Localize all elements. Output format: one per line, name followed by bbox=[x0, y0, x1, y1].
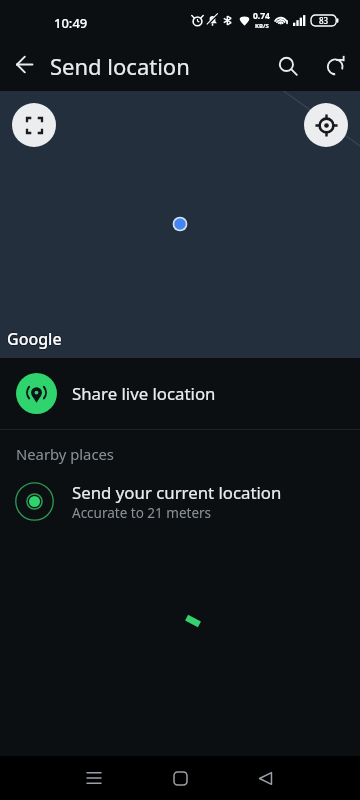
button[interactable]: Back bbox=[241, 756, 289, 800]
staticText: Send location bbox=[50, 51, 190, 81]
button[interactable]: Share live location bbox=[0, 358, 360, 429]
button[interactable]: Refresh bbox=[312, 42, 360, 90]
staticText: 83 bbox=[319, 15, 329, 26]
button[interactable]: Back bbox=[0, 42, 48, 90]
staticText: Google bbox=[8, 328, 63, 350]
button[interactable]: Search bbox=[264, 42, 312, 90]
staticText: Accurate to 21 meters bbox=[72, 504, 212, 522]
staticText: Share live location bbox=[72, 382, 216, 405]
button[interactable]: Expand map bbox=[12, 103, 56, 147]
staticText: 0.74 bbox=[253, 10, 270, 22]
button[interactable]: My location bbox=[304, 103, 348, 147]
button[interactable]: Send your current location bbox=[0, 471, 360, 532]
staticText: Google bbox=[6, 328, 61, 350]
staticText: Google bbox=[7, 328, 62, 350]
button[interactable]: Recents bbox=[70, 756, 118, 800]
staticText: Google bbox=[7, 327, 62, 349]
staticText: Nearby places bbox=[16, 444, 114, 464]
staticText: Send your current location bbox=[72, 481, 282, 504]
staticText: KB/S bbox=[255, 22, 269, 30]
button[interactable]: Home bbox=[156, 756, 204, 800]
staticText: 10:49 bbox=[54, 14, 88, 32]
staticText: Google bbox=[7, 329, 62, 351]
